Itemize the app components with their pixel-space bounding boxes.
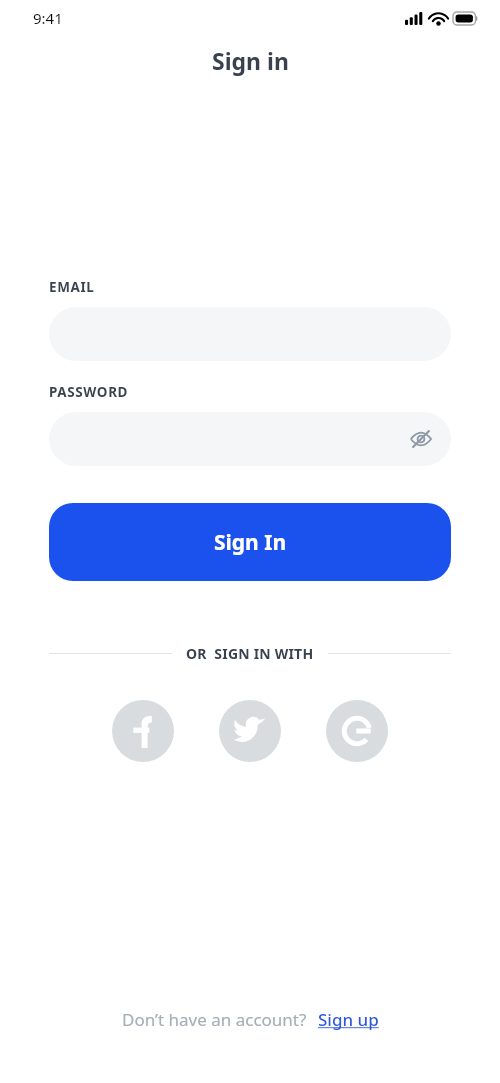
staticText: Don’t have an account? bbox=[122, 1008, 307, 1031]
button[interactable]: Sign in with Facebook bbox=[112, 700, 174, 762]
staticText: EMAIL bbox=[49, 278, 95, 296]
staticText: Sign in bbox=[212, 45, 289, 76]
staticText: Sign up bbox=[318, 1008, 379, 1031]
button[interactable]: Sign up bbox=[318, 1008, 379, 1031]
staticText: 9:41 bbox=[33, 8, 63, 28]
staticText: PASSWORD bbox=[49, 383, 129, 401]
button[interactable]: Sign In bbox=[49, 503, 451, 581]
button[interactable]: Show password bbox=[49, 412, 451, 466]
button[interactable]: Sign in with Google bbox=[326, 700, 388, 762]
staticText: OR SIGN IN WITH bbox=[186, 644, 314, 663]
staticText: Sign In bbox=[214, 528, 287, 557]
button[interactable]: Sign in with Twitter bbox=[219, 700, 281, 762]
button[interactable]: Show password bbox=[403, 421, 439, 457]
